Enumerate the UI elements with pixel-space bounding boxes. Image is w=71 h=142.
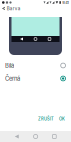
button[interactable]: Černá: [0, 72, 71, 85]
staticText: Bílá: [5, 62, 14, 69]
staticText: 9:41: [62, 0, 69, 5]
staticText: OK: [59, 116, 65, 121]
button[interactable]: Home: [33, 134, 38, 139]
staticText: Barva: [7, 6, 21, 11]
button[interactable]: Back: [0, 5, 7, 12]
staticText: Černá: [5, 75, 20, 82]
staticText: ZRUŠIT: [38, 116, 54, 121]
button[interactable]: OK: [57, 114, 67, 124]
button[interactable]: ZRUŠIT: [36, 114, 56, 124]
button[interactable]: Back: [15, 134, 19, 138]
button[interactable]: Recent apps: [52, 135, 56, 138]
button[interactable]: Bílá: [0, 59, 71, 72]
